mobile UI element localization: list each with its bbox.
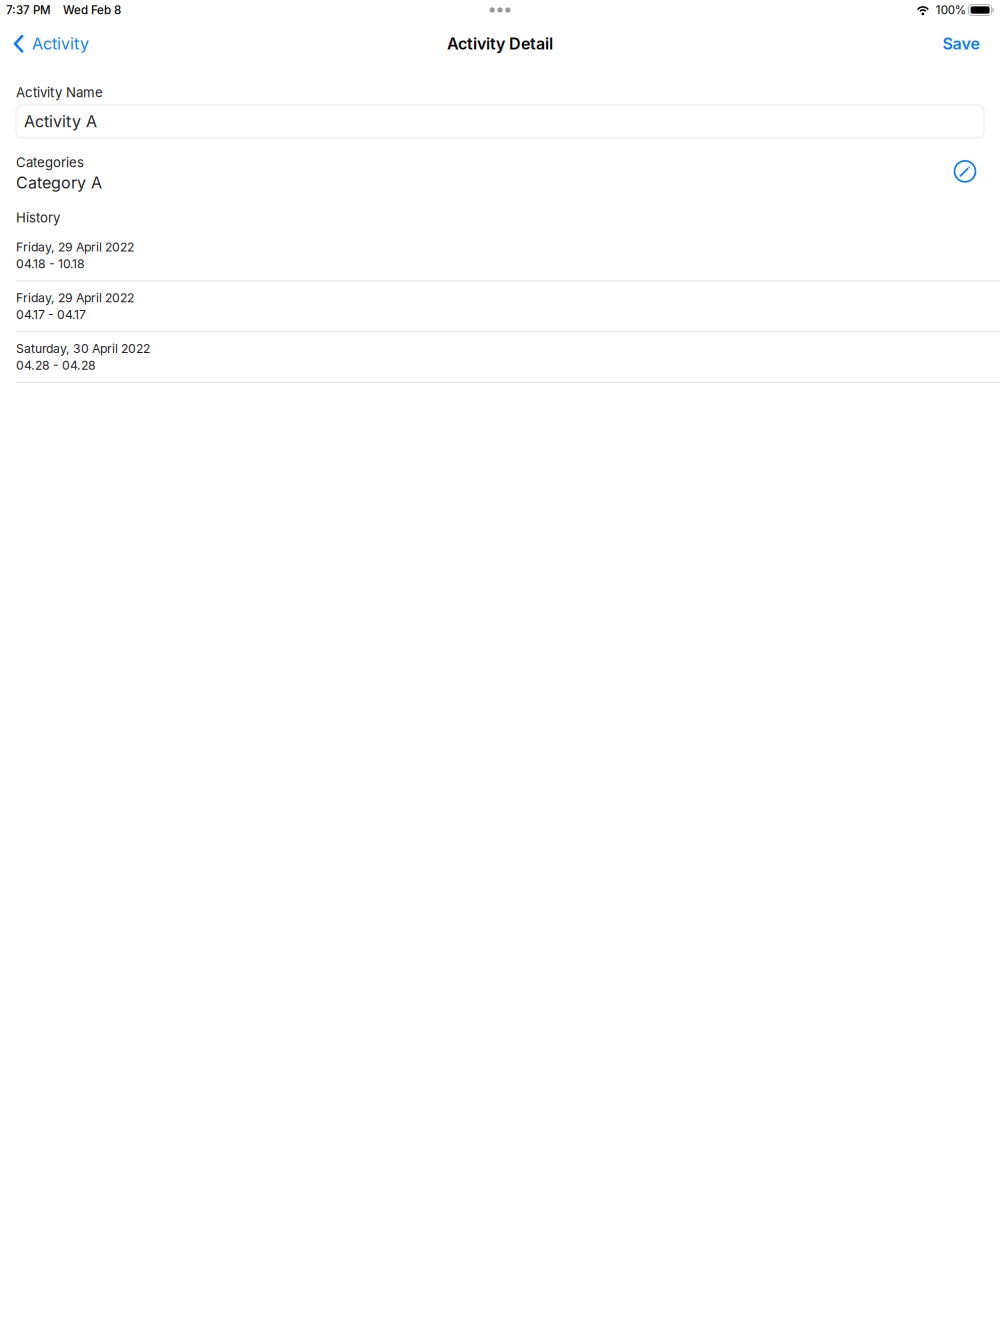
staticText: Save xyxy=(942,34,979,53)
staticText: 04.28 - 04.28 xyxy=(16,358,96,373)
button[interactable]: Save xyxy=(922,28,1000,59)
button[interactable]: Edit categories xyxy=(954,161,984,186)
staticText: 04.17 - 04.17 xyxy=(16,307,86,322)
button[interactable]: Saturday, 30 April 2022 xyxy=(0,332,1000,383)
staticText: Friday, 29 April 2022 xyxy=(16,290,134,305)
staticText: Activity xyxy=(32,34,89,53)
button[interactable]: Friday, 29 April 2022 xyxy=(0,231,1000,281)
button[interactable]: Activity xyxy=(0,28,103,59)
staticText: History xyxy=(16,210,60,226)
staticText: 100% xyxy=(936,3,966,17)
staticText: Friday, 29 April 2022 xyxy=(16,240,134,254)
button[interactable]: Activity A xyxy=(16,105,984,138)
staticText: Activity Name xyxy=(16,84,103,100)
staticText: Category A xyxy=(16,173,102,192)
staticText: Saturday, 30 April 2022 xyxy=(16,341,150,356)
staticText: 7:37 PM xyxy=(6,3,51,17)
staticText: Wed Feb 8 xyxy=(63,3,121,17)
button[interactable]: Friday, 29 April 2022 xyxy=(0,281,1000,332)
staticText: Activity A xyxy=(24,112,97,131)
staticText: Activity Detail xyxy=(447,34,553,53)
staticText: Categories xyxy=(16,154,84,170)
staticText: 04.18 - 10.18 xyxy=(16,256,85,271)
